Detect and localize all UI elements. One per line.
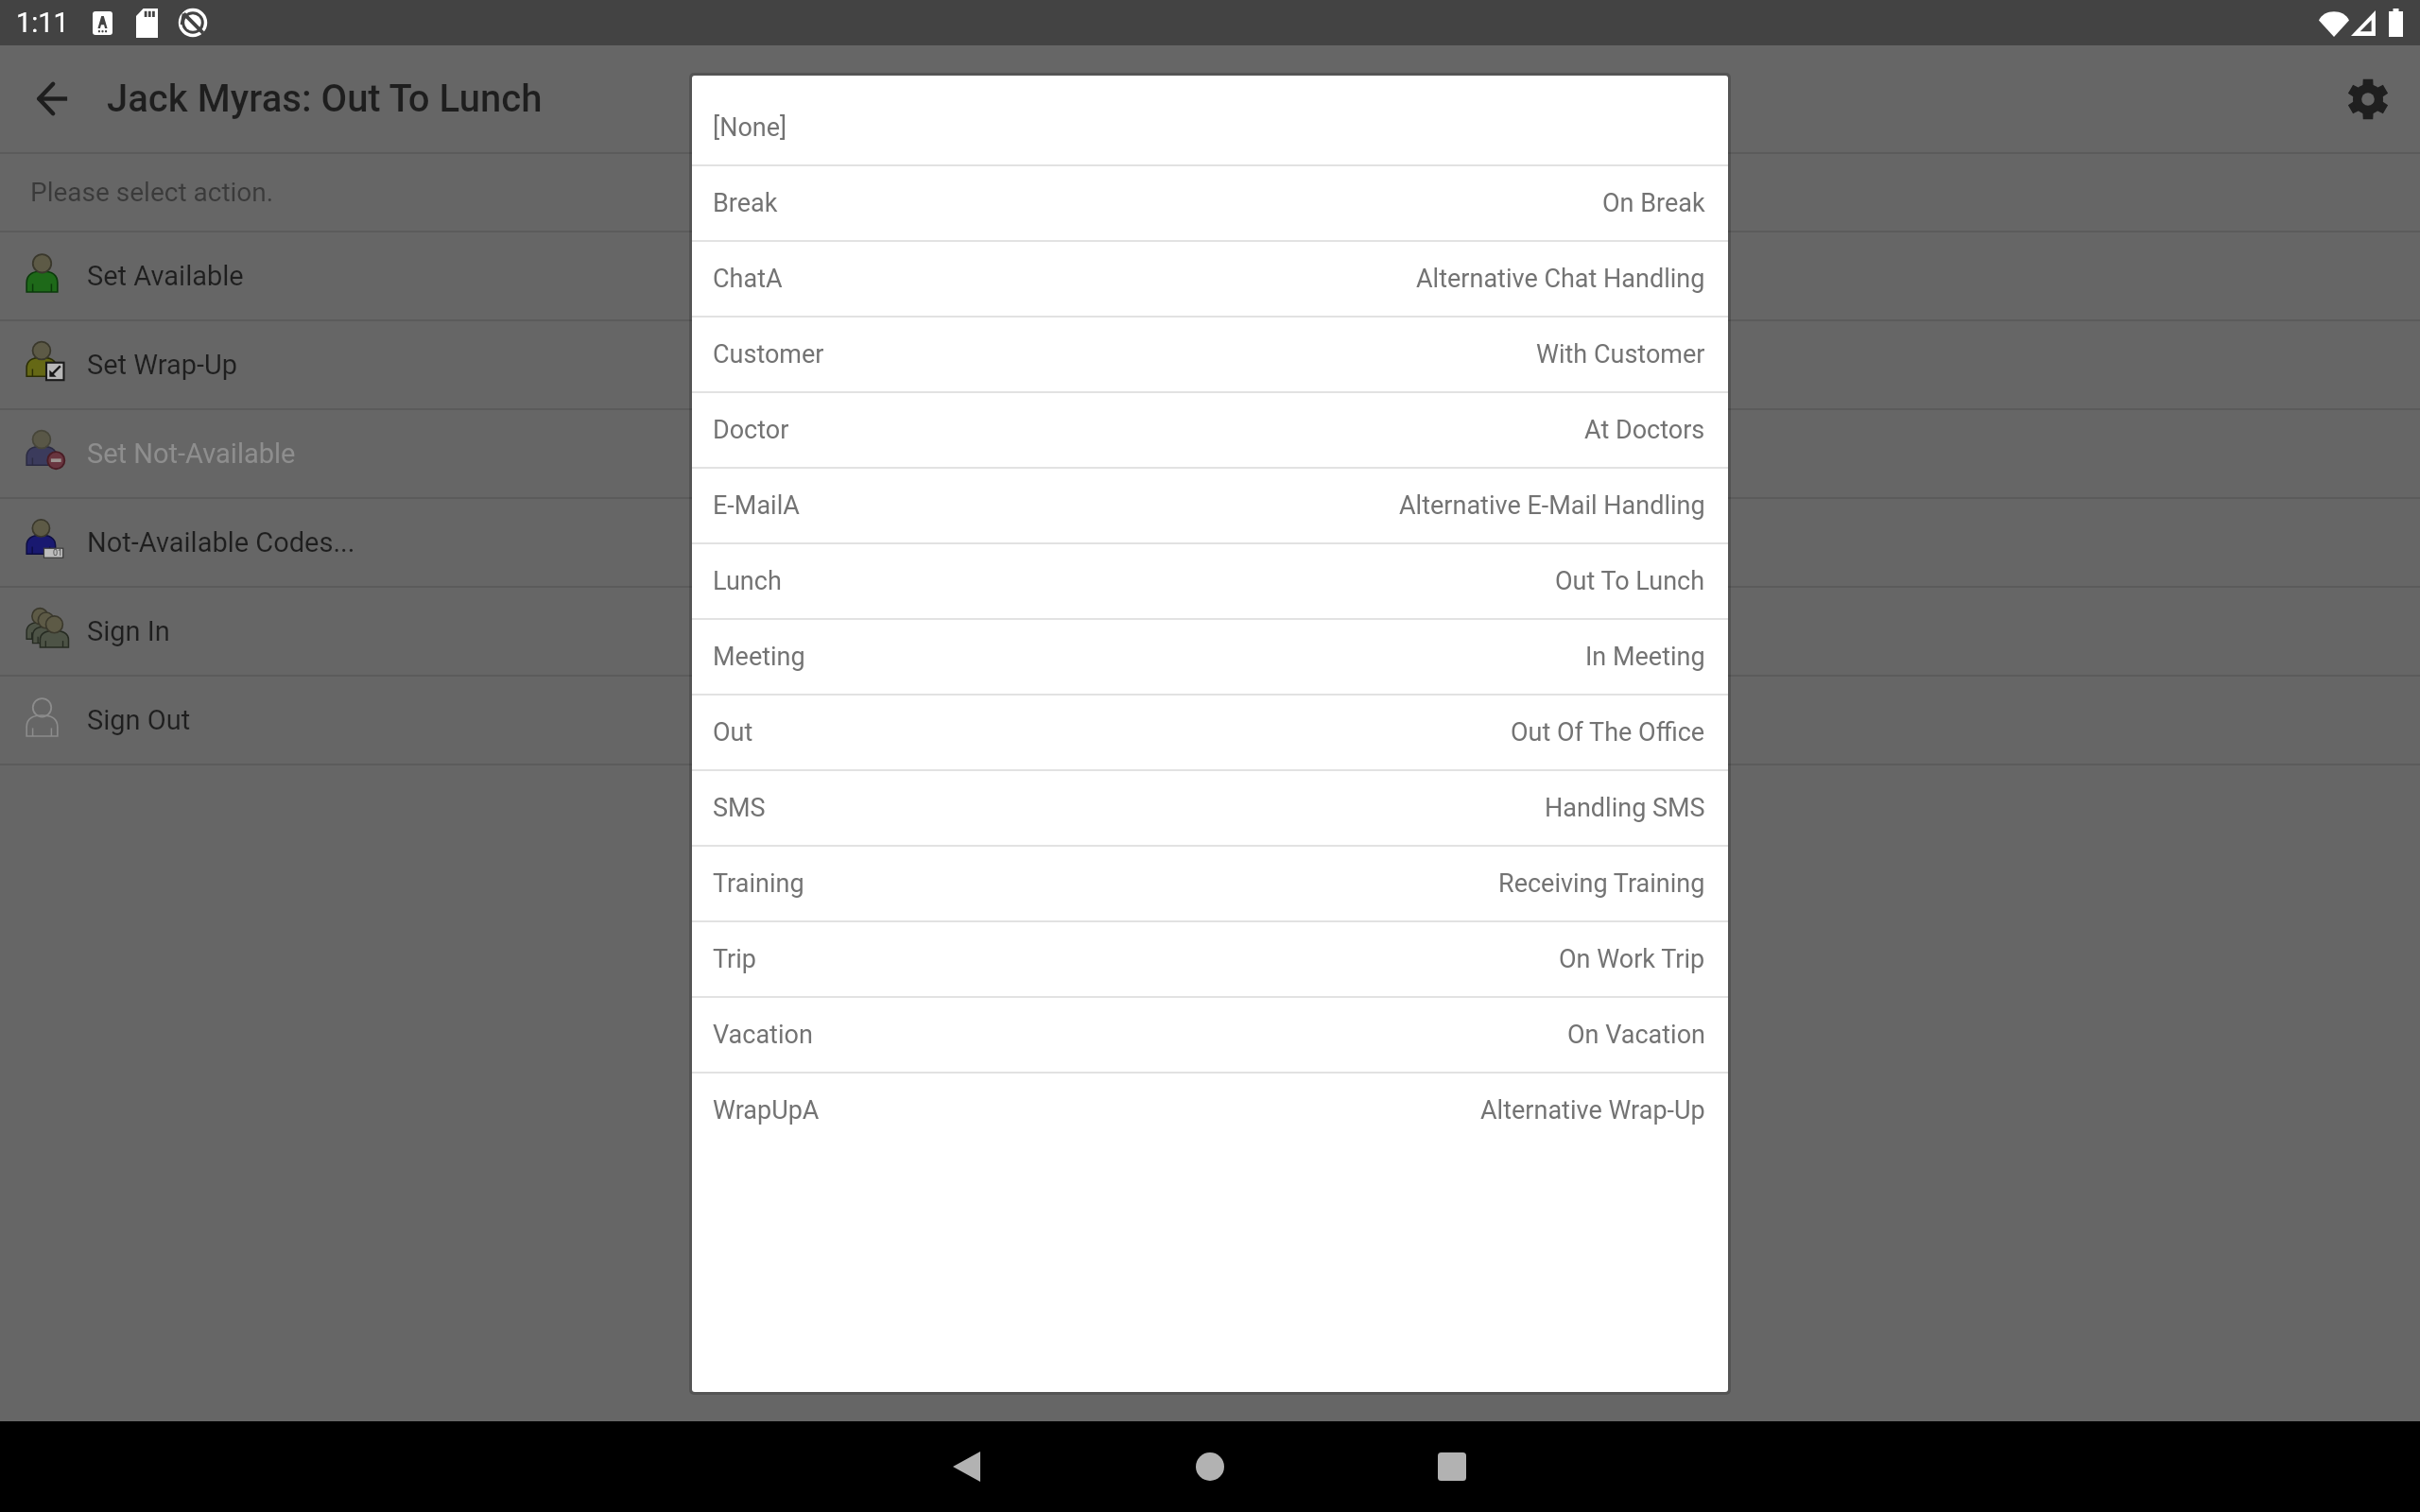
staticText: Receiving Training <box>1498 868 1705 899</box>
button[interactable]: Meeting <box>692 620 1728 694</box>
staticText: Trip <box>713 944 756 974</box>
staticText: Alternative E-Mail Handling <box>1399 490 1705 521</box>
staticText: Set Available <box>87 260 244 292</box>
button[interactable]: Back <box>921 1421 1011 1512</box>
button[interactable]: Sign In <box>0 588 2420 675</box>
button[interactable]: Break <box>692 166 1728 240</box>
staticText: Sign In <box>87 615 170 647</box>
button[interactable]: Settings <box>2315 46 2420 151</box>
button[interactable]: Set Wrap-Up <box>0 321 2420 408</box>
staticText: Alternative Chat Handling <box>1416 264 1705 294</box>
button[interactable]: WrapUpA <box>692 1074 1728 1147</box>
staticText: ChatA <box>713 264 783 294</box>
staticText: SMS <box>713 793 766 823</box>
button[interactable]: [None] <box>692 91 1728 164</box>
button[interactable]: Set Not-Available <box>0 410 2420 497</box>
staticText: Lunch <box>713 566 782 596</box>
button[interactable]: Home <box>1165 1421 1255 1512</box>
staticText: On Work Trip <box>1559 944 1705 974</box>
button[interactable]: Recent apps <box>1407 1421 1497 1512</box>
staticText: On Vacation <box>1567 1020 1705 1050</box>
button[interactable]: Set Available <box>0 232 2420 319</box>
staticText: Handling SMS <box>1545 793 1705 823</box>
staticText: E-MailA <box>713 490 800 521</box>
button[interactable]: Customer <box>692 318 1728 391</box>
staticText: Set Not-Available <box>87 438 296 470</box>
button[interactable]: E-MailA <box>692 469 1728 542</box>
staticText: Please select action. <box>30 177 274 208</box>
button[interactable]: Sign Out <box>0 677 2420 764</box>
staticText: On Break <box>1602 188 1705 218</box>
staticText: [None] <box>713 112 787 143</box>
button[interactable]: Trip <box>692 922 1728 996</box>
staticText: With Customer <box>1536 339 1705 369</box>
staticText: Doctor <box>713 415 789 445</box>
staticText: Set Wrap-Up <box>87 349 238 381</box>
staticText: WrapUpA <box>713 1095 820 1125</box>
staticText: Alternative Wrap-Up <box>1480 1095 1705 1125</box>
button[interactable]: SMS <box>692 771 1728 845</box>
staticText: Out <box>713 717 753 747</box>
staticText: 01 <box>53 548 63 558</box>
staticText: 1:11 <box>16 7 69 39</box>
staticText: Vacation <box>713 1020 813 1050</box>
staticText: Customer <box>713 339 824 369</box>
button[interactable]: ChatA <box>692 242 1728 316</box>
staticText: Training <box>713 868 804 899</box>
staticText: Not-Available Codes... <box>87 526 355 558</box>
staticText: At Doctors <box>1584 415 1705 445</box>
staticText: Out Of The Office <box>1511 717 1705 747</box>
button[interactable]: Lunch <box>692 544 1728 618</box>
staticText: Meeting <box>713 642 805 672</box>
staticText: Out To Lunch <box>1555 566 1705 596</box>
button[interactable]: Out <box>692 696 1728 769</box>
staticText: Break <box>713 188 778 218</box>
staticText: Jack Myras: Out To Lunch <box>107 77 543 121</box>
button[interactable]: Navigate up <box>0 46 105 151</box>
button[interactable]: Doctor <box>692 393 1728 467</box>
staticText: Sign Out <box>87 704 191 736</box>
button[interactable]: 01 <box>0 499 2420 586</box>
button[interactable]: Training <box>692 847 1728 920</box>
button[interactable]: Vacation <box>692 998 1728 1072</box>
staticText: In Meeting <box>1585 642 1705 672</box>
